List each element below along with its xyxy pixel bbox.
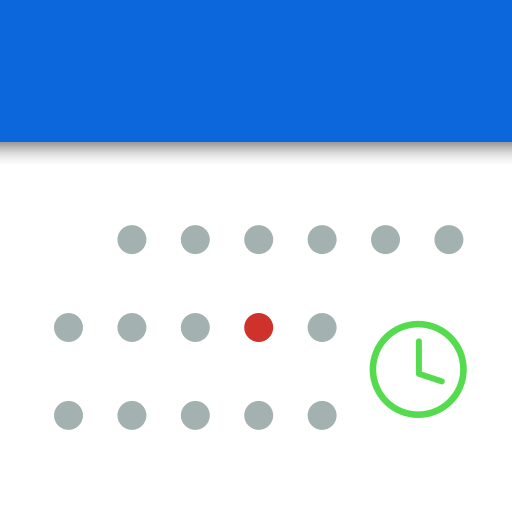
- button[interactable]: Day 13: [117, 401, 146, 430]
- button[interactable]: Day 14: [181, 401, 210, 430]
- button[interactable]: Day 15: [244, 401, 273, 430]
- button[interactable]: Day 9: [181, 313, 210, 342]
- button[interactable]: Day 2: [181, 225, 210, 254]
- button[interactable]: Day 1: [117, 225, 146, 254]
- button[interactable]: Day 12: [54, 401, 83, 430]
- button[interactable]: Day 6: [434, 225, 463, 254]
- button[interactable]: Day 8: [117, 313, 146, 342]
- button[interactable]: Day 16: [308, 401, 337, 430]
- button[interactable]: Day 4: [308, 225, 337, 254]
- button[interactable]: Day 3: [244, 225, 273, 254]
- button[interactable]: Day 7: [54, 313, 83, 342]
- button[interactable]: Day 5: [371, 225, 400, 254]
- button[interactable]: Set time: [0, 0, 512, 512]
- button[interactable]: Day 11: [308, 313, 337, 342]
- button[interactable]: Day 10, selected: [244, 313, 273, 342]
